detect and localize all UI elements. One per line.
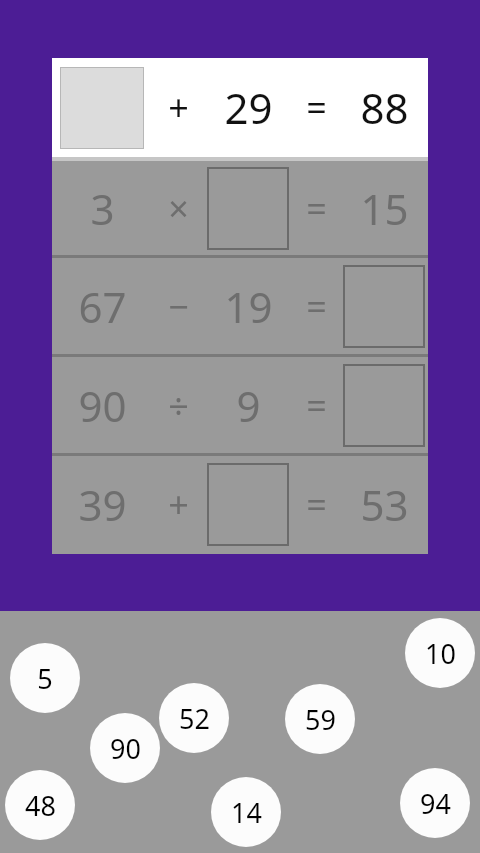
staticText: 15 [360, 180, 409, 237]
staticText: 52 [179, 700, 210, 737]
staticText: 29 [224, 79, 273, 136]
staticText: 94 [420, 785, 451, 822]
button[interactable]: 48 [5, 770, 75, 840]
staticText: − [168, 282, 189, 331]
staticText: 67 [78, 278, 127, 335]
button[interactable]: 39 [52, 456, 428, 552]
staticText: 39 [78, 476, 127, 533]
staticText: = [306, 184, 327, 233]
staticText: = [306, 83, 327, 132]
button[interactable]: Empty answer slot [207, 167, 289, 250]
staticText: 9 [236, 377, 261, 434]
button[interactable]: 14 [211, 777, 281, 847]
staticText: 19 [224, 278, 273, 335]
staticText: 53 [360, 476, 409, 533]
button[interactable]: Empty answer slot [60, 67, 144, 149]
button[interactable]: 10 [405, 618, 475, 688]
button[interactable]: Empty answer slot [207, 463, 289, 546]
button[interactable]: Empty answer slot [52, 58, 428, 157]
staticText: ÷ [168, 381, 189, 430]
staticText: 59 [305, 701, 336, 738]
button[interactable]: 67 [52, 258, 428, 354]
button[interactable]: Empty answer slot [343, 265, 425, 348]
staticText: = [306, 282, 327, 331]
button[interactable]: 90 [52, 357, 428, 453]
button[interactable]: 94 [400, 768, 470, 838]
staticText: 10 [425, 635, 456, 672]
staticText: × [168, 184, 189, 233]
button[interactable]: 90 [90, 713, 160, 783]
staticText: + [168, 480, 189, 529]
staticText: 48 [25, 787, 56, 824]
button[interactable]: Empty answer slot [343, 364, 425, 447]
button[interactable]: 52 [159, 683, 229, 753]
staticText: 90 [78, 377, 127, 434]
staticText: 5 [37, 660, 53, 697]
staticText: = [306, 480, 327, 529]
button[interactable]: 3 [52, 161, 428, 255]
staticText: 3 [90, 180, 115, 237]
staticText: 90 [110, 730, 141, 767]
staticText: = [306, 381, 327, 430]
button[interactable]: 59 [285, 684, 355, 754]
staticText: 88 [360, 79, 409, 136]
staticText: + [168, 83, 189, 132]
button[interactable]: 5 [10, 643, 80, 713]
staticText: 14 [231, 794, 262, 831]
